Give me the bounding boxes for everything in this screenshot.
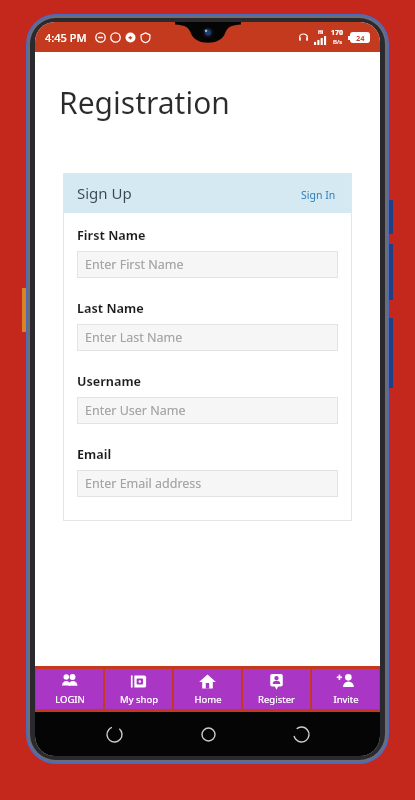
- button[interactable]: Enter Email address: [77, 470, 338, 497]
- staticText: 170: [331, 28, 344, 38]
- button[interactable]: My shop: [105, 669, 172, 709]
- staticText: Invite: [333, 693, 359, 706]
- staticText: First Name: [77, 227, 146, 244]
- button[interactable]: LOGIN: [36, 669, 103, 709]
- staticText: 24: [356, 33, 365, 43]
- staticText: Enter First Name: [85, 256, 184, 273]
- staticText: Home: [194, 693, 222, 706]
- staticText: Registration: [59, 82, 230, 123]
- staticText: 4:45 PM: [45, 30, 87, 45]
- staticText: My shop: [120, 693, 158, 706]
- button[interactable]: Enter First Name: [77, 251, 338, 278]
- staticText: B/s: [333, 38, 343, 46]
- staticText: Enter Email address: [85, 475, 202, 492]
- staticText: LOGIN: [55, 693, 85, 706]
- button[interactable]: Enter User Name: [77, 397, 338, 424]
- button[interactable]: Invite: [312, 669, 379, 709]
- staticText: Last Name: [77, 300, 144, 317]
- staticText: Register: [258, 693, 295, 706]
- staticText: Sign Up: [77, 183, 132, 203]
- staticText: Hi: [318, 29, 324, 36]
- button[interactable]: Enter Last Name: [77, 324, 338, 351]
- staticText: Email: [77, 446, 112, 463]
- button[interactable]: Home: [174, 669, 241, 709]
- button[interactable]: Home: [193, 719, 223, 749]
- staticText: Username: [77, 373, 142, 390]
- button[interactable]: Back: [99, 719, 129, 749]
- button[interactable]: Register: [243, 669, 310, 709]
- staticText: Enter User Name: [85, 402, 186, 419]
- staticText: Enter Last Name: [85, 329, 183, 346]
- button[interactable]: Sign In: [299, 187, 338, 203]
- button[interactable]: Recents: [286, 719, 316, 749]
